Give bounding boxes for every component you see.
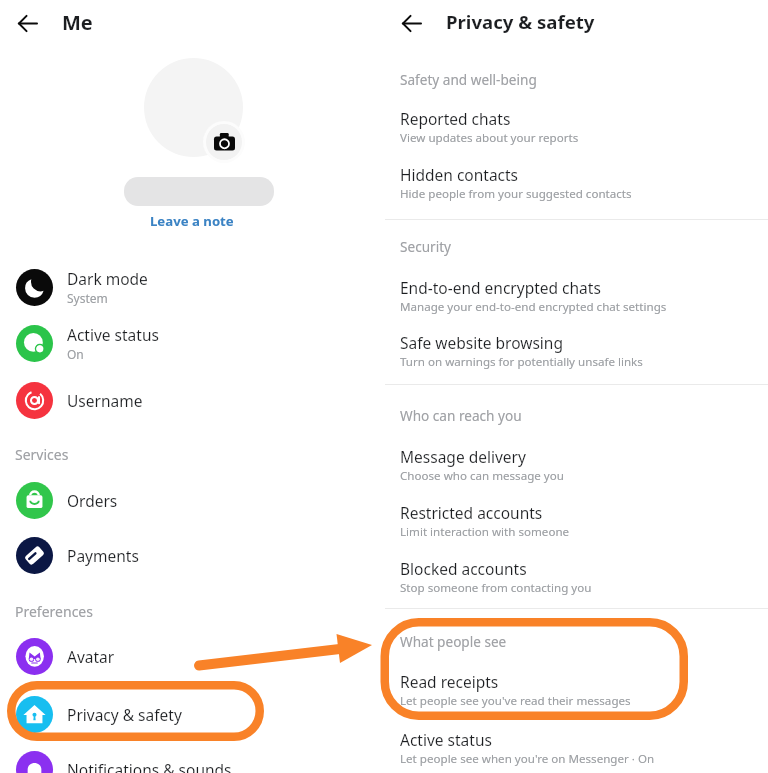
staticText: Who can reach you [400,406,522,425]
staticText: Avatar [67,646,115,667]
staticText: Security [400,237,452,256]
staticText: What people see [400,632,507,651]
button[interactable]: Back [5,1,49,45]
staticText: Leave a note [150,212,234,230]
button[interactable]: Payments [0,536,384,574]
staticText: Message delivery [400,446,526,467]
button[interactable]: Privacy & safety [0,695,384,733]
staticText: Hidden contacts [400,164,519,185]
staticText: Dark mode [67,268,148,289]
staticText: Manage your end-to-end encrypted chat se… [400,299,667,315]
staticText: Hide people from your suggested contacts [400,186,632,202]
staticText: On [67,346,84,362]
staticText: Let people see when you're on Messenger … [400,751,655,767]
staticText: Preferences [15,602,93,621]
staticText: View updates about your reports [400,130,579,146]
staticText: Privacy & safety [446,9,595,34]
staticText: Privacy & safety [67,704,182,725]
staticText: Limit interaction with someone [400,524,570,540]
button[interactable]: End-to-end encrypted chats [384,277,768,315]
button[interactable]: Message delivery [384,446,768,484]
button[interactable]: Active status [0,323,384,363]
button[interactable]: Read receipts [384,671,768,709]
button[interactable]: Blocked accounts [384,558,768,596]
staticText: Stop someone from contacting you [400,580,592,596]
button[interactable]: Username [0,381,384,419]
staticText: Payments [67,545,139,566]
staticText: Safe website browsing [400,332,563,353]
staticText: Services [15,445,69,464]
staticText: Username [67,390,143,411]
button[interactable]: Change profile photo [203,121,245,163]
button[interactable]: Notifications & sounds [0,750,384,773]
staticText: Notifications & sounds [67,759,232,773]
button[interactable]: Back [389,1,433,45]
staticText: System [67,290,108,306]
staticText: Choose who can message you [400,468,564,484]
staticText: Turn on warnings for potentially unsafe … [400,354,643,370]
button[interactable]: Dark mode [0,267,384,307]
button[interactable]: Hidden contacts [384,164,768,202]
button[interactable]: Restricted accounts [384,502,768,540]
button[interactable]: Avatar [0,637,384,675]
button[interactable]: Active status [384,729,768,767]
button[interactable]: Leave a note [117,209,267,233]
button[interactable]: Safe website browsing [384,332,768,370]
staticText: End-to-end encrypted chats [400,277,601,298]
staticText: Active status [400,729,492,750]
staticText: Blocked accounts [400,558,527,579]
staticText: Read receipts [400,671,499,692]
staticText: Me [62,9,93,36]
staticText: Let people see you've read their message… [400,693,631,709]
staticText: Reported chats [400,108,511,129]
button[interactable]: Orders [0,481,384,519]
staticText: Active status [67,324,159,345]
button[interactable]: Reported chats [384,108,768,146]
staticText: Orders [67,490,118,511]
staticText: Restricted accounts [400,502,543,523]
staticText: Safety and well-being [400,70,537,89]
button[interactable]: Profile photo [144,58,243,157]
